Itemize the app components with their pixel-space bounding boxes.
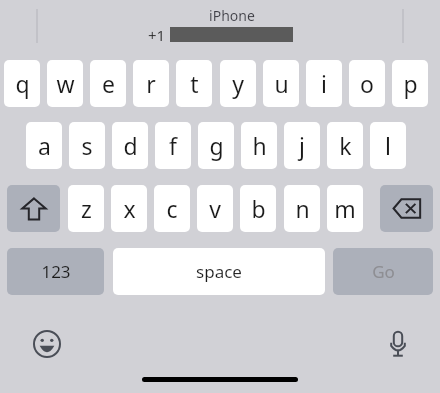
staticText: l xyxy=(385,130,391,161)
staticText: iPhone xyxy=(209,6,255,25)
button[interactable]: a xyxy=(26,122,62,169)
button[interactable]: r xyxy=(133,60,169,107)
staticText: Go xyxy=(372,260,395,283)
button[interactable]: Shift xyxy=(7,185,60,232)
staticText: t xyxy=(190,68,199,99)
staticText: w xyxy=(56,68,75,99)
button[interactable]: z xyxy=(68,185,104,232)
button[interactable]: t xyxy=(176,60,212,107)
button[interactable]: m xyxy=(327,185,363,232)
staticText: j xyxy=(299,130,305,161)
staticText: x xyxy=(123,193,136,224)
staticText: f xyxy=(169,130,177,161)
button[interactable]: f xyxy=(155,122,191,169)
button[interactable]: s xyxy=(69,122,105,169)
staticText: e xyxy=(102,68,115,99)
staticText: d xyxy=(123,130,138,161)
button[interactable]: Dictation xyxy=(378,324,418,364)
button[interactable]: space xyxy=(113,248,325,295)
button[interactable]: d xyxy=(112,122,148,169)
button[interactable]: q xyxy=(4,60,40,107)
staticText: b xyxy=(251,193,266,224)
staticText: r xyxy=(146,68,156,99)
button[interactable]: k xyxy=(327,122,363,169)
staticText: c xyxy=(166,193,178,224)
button[interactable]: g xyxy=(198,122,234,169)
button[interactable]: i xyxy=(306,60,342,107)
button[interactable]: p xyxy=(392,60,428,107)
button[interactable]: 123 xyxy=(7,248,104,295)
button[interactable]: w xyxy=(47,60,83,107)
button[interactable]: c xyxy=(154,185,190,232)
staticText: +1 xyxy=(148,25,166,45)
button[interactable]: u xyxy=(263,60,299,107)
staticText: space xyxy=(196,260,242,283)
staticText: u xyxy=(274,68,289,99)
staticText: z xyxy=(81,193,92,224)
button[interactable]: h xyxy=(241,122,277,169)
staticText: s xyxy=(81,130,93,161)
staticText: a xyxy=(38,130,51,161)
staticText: i xyxy=(321,68,327,99)
staticText: o xyxy=(360,68,374,99)
button[interactable]: v xyxy=(197,185,233,232)
button[interactable]: Go xyxy=(333,248,433,295)
button[interactable]: j xyxy=(284,122,320,169)
button[interactable]: n xyxy=(284,185,320,232)
staticText: g xyxy=(209,130,224,161)
button[interactable]: x xyxy=(111,185,147,232)
button[interactable]: b xyxy=(240,185,276,232)
staticText: k xyxy=(339,130,352,161)
staticText: m xyxy=(334,193,356,224)
button[interactable]: o xyxy=(349,60,385,107)
staticText: v xyxy=(209,193,221,224)
button[interactable]: y xyxy=(220,60,256,107)
staticText: n xyxy=(295,193,310,224)
staticText: q xyxy=(15,68,30,99)
staticText: p xyxy=(403,68,418,99)
staticText: 123 xyxy=(41,260,71,283)
button[interactable]: l xyxy=(370,122,406,169)
staticText: y xyxy=(232,68,244,99)
button[interactable]: e xyxy=(90,60,126,107)
button[interactable]: Emoji keyboard xyxy=(27,324,67,364)
staticText: h xyxy=(252,130,267,161)
button[interactable]: Backspace xyxy=(380,185,433,232)
